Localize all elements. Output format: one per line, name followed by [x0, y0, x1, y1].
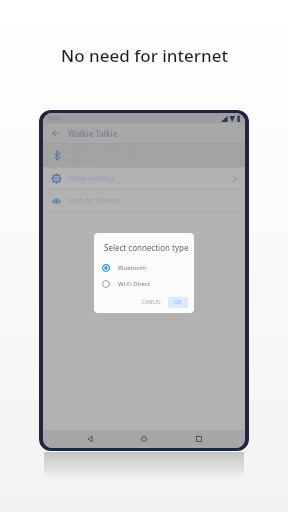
- button[interactable]: Home: [136, 431, 152, 447]
- button[interactable]: Back: [82, 431, 98, 447]
- staticText: No need for internet: [61, 44, 228, 67]
- button[interactable]: CANCEL: [138, 297, 165, 308]
- staticText: Scan for Devices: [68, 196, 122, 206]
- button[interactable]: Recent apps: [191, 431, 207, 447]
- staticText: OK: [174, 299, 182, 306]
- button[interactable]: OK: [168, 297, 188, 308]
- staticText: Other settings: [68, 174, 116, 184]
- staticText: 10:00: [47, 115, 60, 122]
- button[interactable]: Select connection type: [43, 144, 245, 167]
- button[interactable]: Other settings: [43, 168, 245, 189]
- staticText: Walkie Talkie: [68, 128, 118, 139]
- staticText: CANCEL: [142, 299, 161, 306]
- staticText: Wi-Fi Direct: [118, 280, 150, 288]
- staticText: Select connection type: [104, 242, 189, 253]
- staticText: Bluetooth: [118, 264, 146, 272]
- button[interactable]: Scan for Devices: [43, 190, 245, 211]
- button[interactable]: Wi-Fi Direct: [94, 277, 194, 290]
- button[interactable]: Back: [49, 126, 63, 140]
- button[interactable]: Bluetooth: [94, 261, 194, 274]
